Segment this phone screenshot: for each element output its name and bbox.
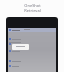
staticText: OneShot xyxy=(24,3,41,8)
button[interactable] xyxy=(12,44,29,50)
staticText: Retrieval xyxy=(24,8,41,13)
